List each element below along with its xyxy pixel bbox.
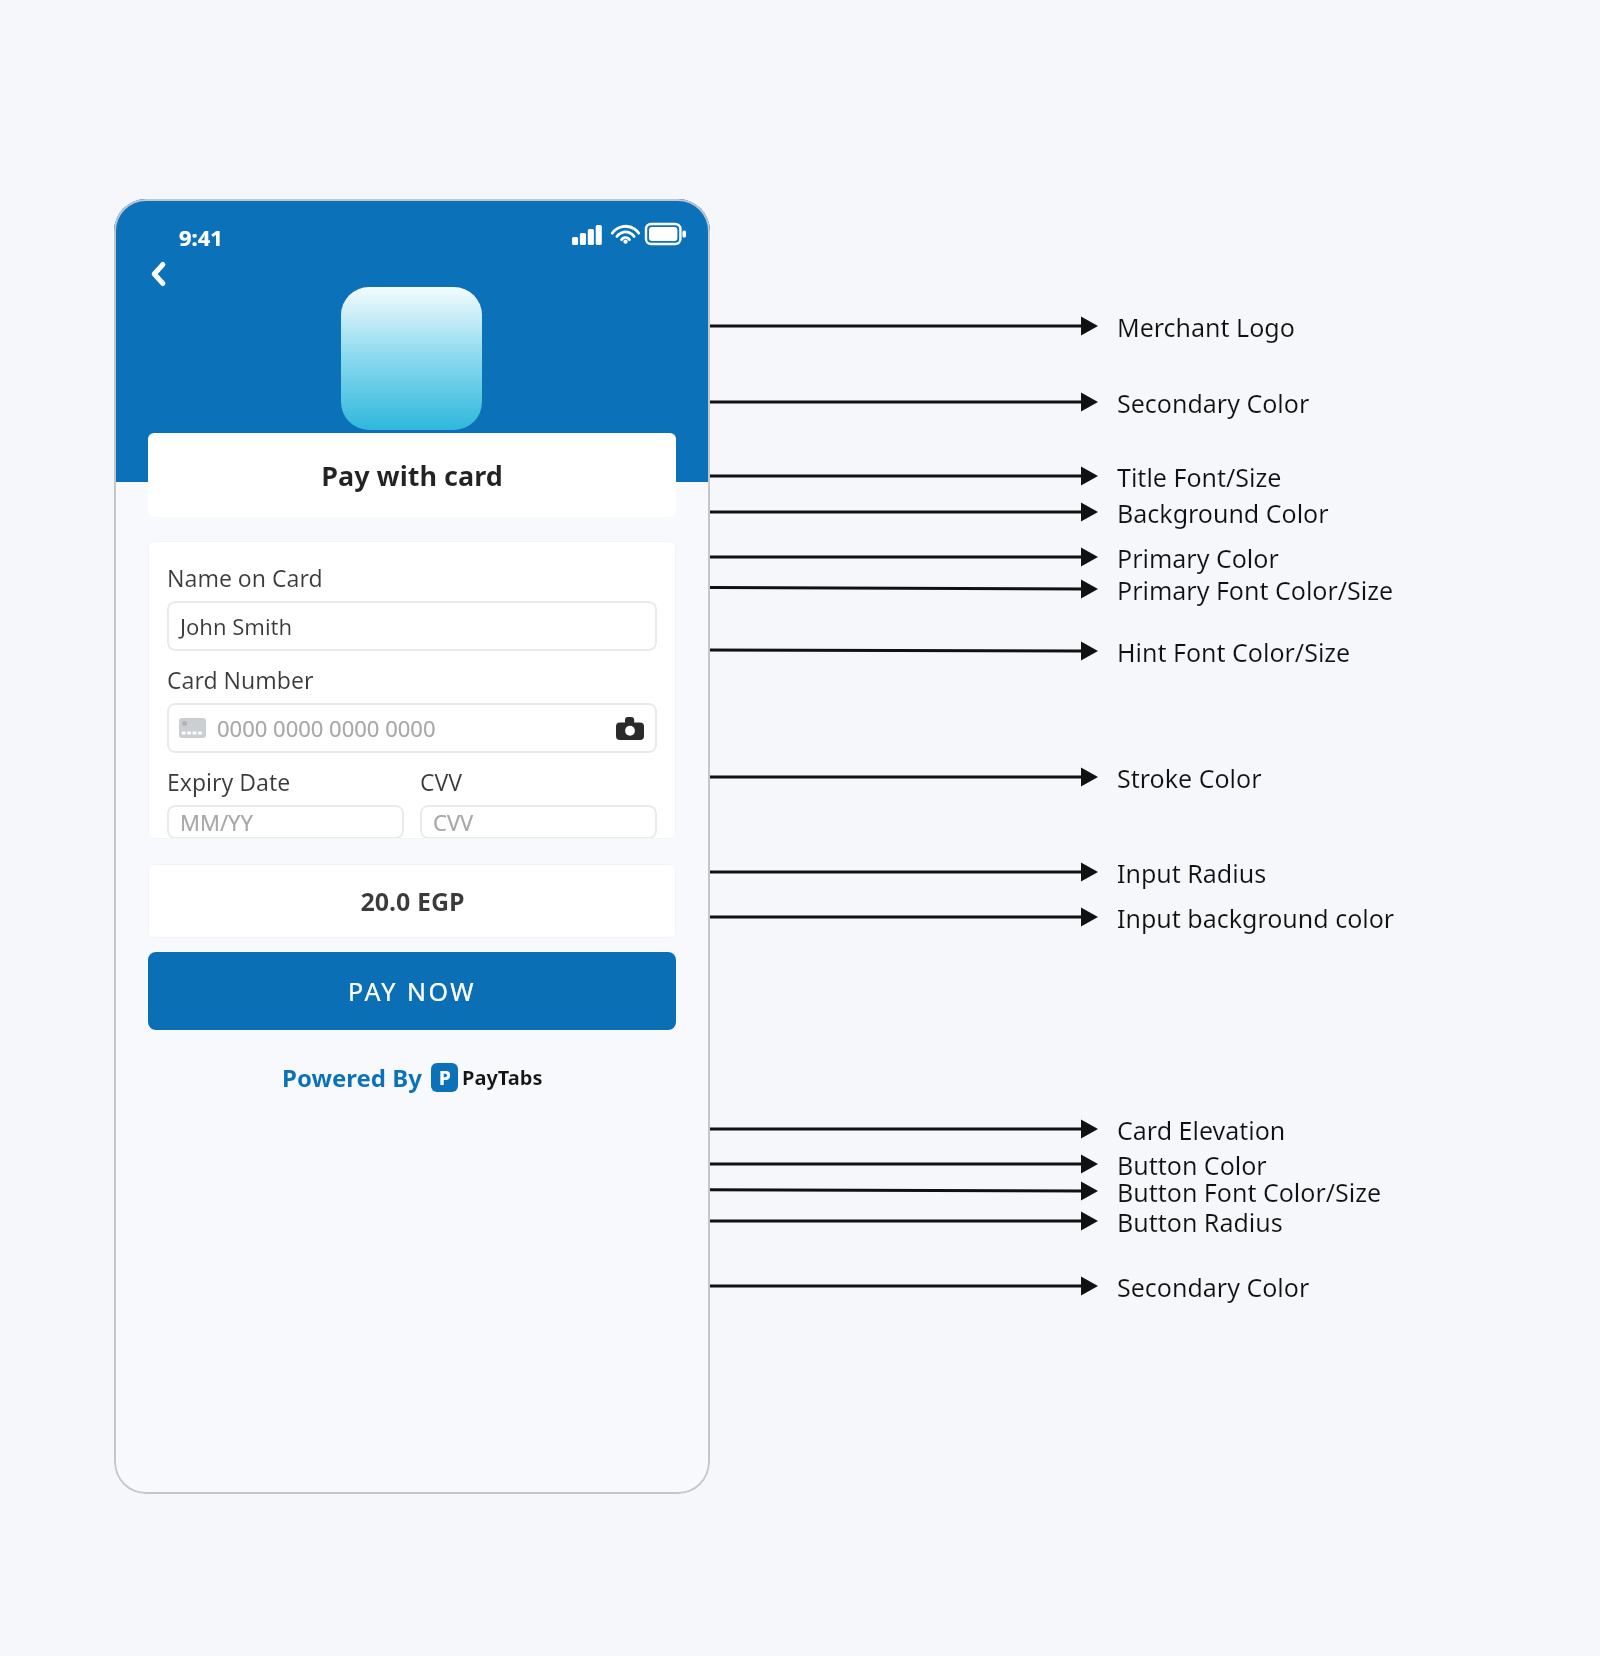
button[interactable]: PAY NOW — [148, 952, 676, 1030]
button[interactable]: Powered By — [148, 1055, 676, 1099]
staticText: Input Radius — [1117, 856, 1267, 890]
staticText: Pay with card — [321, 457, 503, 494]
staticText: Button Radius — [1117, 1205, 1283, 1239]
staticText: 20.0 EGP — [360, 884, 465, 918]
staticText: MM/YY — [180, 807, 253, 837]
staticText: Button Font Color/Size — [1117, 1175, 1382, 1209]
button[interactable]: MM/YY — [167, 805, 404, 839]
staticText: PayTabs — [462, 1064, 543, 1091]
button[interactable]: CVV — [420, 805, 657, 839]
button[interactable]: Back — [136, 251, 182, 297]
staticText: PAY NOW — [348, 974, 477, 1008]
staticText: Primary Font Color/Size — [1117, 573, 1394, 607]
staticText: Hint Font Color/Size — [1117, 635, 1351, 669]
staticText: Stroke Color — [1117, 761, 1262, 795]
staticText: Input background color — [1117, 901, 1395, 935]
staticText: Background Color — [1117, 496, 1329, 530]
staticText: Card Number — [167, 664, 314, 695]
staticText: Card Elevation — [1117, 1113, 1286, 1147]
staticText: Name on Card — [167, 562, 323, 593]
staticText: CVV — [433, 807, 474, 837]
button[interactable]: 20.0 EGP — [148, 864, 676, 938]
button[interactable]: Scan card — [613, 711, 647, 745]
staticText: Secondary Color — [1117, 386, 1310, 420]
staticText: 0000 0000 0000 0000 — [217, 713, 436, 743]
staticText: CVV — [420, 766, 463, 797]
staticText: Expiry Date — [167, 766, 291, 797]
staticText: Title Font/Size — [1117, 460, 1282, 494]
staticText: John Smith — [180, 611, 293, 641]
staticText: 9:41 — [179, 222, 223, 252]
staticText: Powered By — [282, 1061, 422, 1094]
button[interactable]: John Smith — [167, 601, 657, 651]
staticText: Merchant Logo — [1117, 310, 1295, 344]
staticText: P — [439, 1065, 451, 1091]
button[interactable]: 0000 0000 0000 0000 — [167, 703, 657, 753]
staticText: Primary Color — [1117, 541, 1279, 575]
staticText: Button Color — [1117, 1148, 1267, 1182]
staticText: Secondary Color — [1117, 1270, 1310, 1304]
